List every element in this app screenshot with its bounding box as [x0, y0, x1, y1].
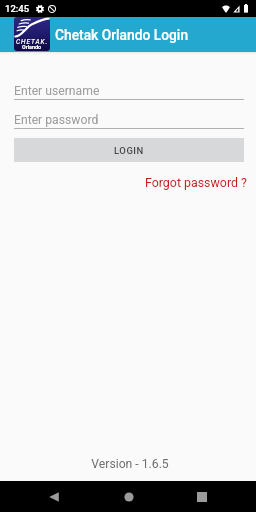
button[interactable]: Back [33, 481, 74, 512]
button[interactable]: Forgot password ? [135, 172, 256, 195]
staticText: Chetak Orlando Login [55, 27, 189, 43]
button[interactable]: LOGIN [14, 138, 244, 162]
button[interactable]: Enter username [0, 80, 256, 100]
staticText: Enter username [14, 84, 100, 98]
staticText: Orlando [22, 44, 42, 50]
staticText: CHETAK. [16, 38, 49, 46]
button[interactable]: Chetak Orlando logo [14, 17, 50, 51]
button[interactable]: Recents [181, 481, 222, 512]
staticText: LOGIN [114, 145, 144, 156]
button[interactable]: Home [108, 481, 149, 512]
staticText: Enter password [14, 113, 99, 127]
staticText: 12:45 [5, 3, 30, 14]
staticText: Version - 1.6.5 [2, 457, 256, 471]
staticText: Forgot password ? [145, 175, 247, 190]
button[interactable]: Enter password [0, 109, 256, 129]
